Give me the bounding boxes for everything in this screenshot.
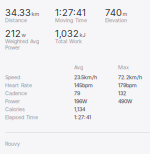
staticText: Calories bbox=[5, 106, 25, 112]
staticText: 79 bbox=[74, 90, 80, 96]
staticText: Rouvy bbox=[5, 140, 20, 147]
staticText: 1:27:41 bbox=[74, 114, 91, 120]
staticText: Weighted Avg Power bbox=[5, 38, 39, 51]
staticText: 132 bbox=[118, 90, 126, 96]
staticText: w bbox=[21, 32, 25, 38]
staticText: kJ bbox=[79, 32, 85, 38]
staticText: Moving Time bbox=[55, 17, 87, 23]
staticText: 23.5km/h bbox=[74, 74, 97, 80]
staticText: 212 bbox=[5, 28, 21, 39]
staticText: Avg bbox=[74, 64, 83, 70]
staticText: 1,134 bbox=[74, 106, 85, 112]
staticText: km bbox=[31, 11, 39, 17]
staticText: 1:27:41 bbox=[55, 7, 86, 18]
staticText: Distance bbox=[5, 17, 27, 23]
staticText: 34.33 bbox=[5, 7, 31, 18]
staticText: Elevation bbox=[105, 17, 127, 23]
staticText: Cadence bbox=[5, 90, 27, 96]
staticText: 196W bbox=[74, 98, 87, 104]
staticText: Power bbox=[5, 98, 20, 104]
staticText: 490W bbox=[118, 98, 132, 104]
staticText: m bbox=[122, 11, 127, 17]
staticText: Speed bbox=[5, 74, 20, 80]
staticText: Heart Rate bbox=[5, 82, 32, 88]
staticText: 1,032 bbox=[55, 28, 79, 39]
staticText: Max bbox=[118, 64, 129, 70]
staticText: 740 bbox=[105, 7, 122, 18]
staticText: 145bpm bbox=[74, 82, 93, 88]
staticText: Total Work bbox=[55, 38, 82, 44]
staticText: 179bpm bbox=[118, 82, 137, 88]
staticText: Elapsed Time bbox=[5, 114, 38, 120]
staticText: 72.2km/h bbox=[118, 74, 142, 80]
